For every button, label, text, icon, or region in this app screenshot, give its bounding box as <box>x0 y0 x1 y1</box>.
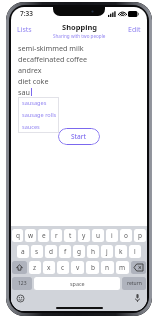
staticText: e <box>42 231 46 240</box>
button[interactable]: t <box>64 229 76 242</box>
staticText: semi-skimmed milk <box>18 43 84 53</box>
staticText: decaffeinated coffee <box>18 54 88 64</box>
button[interactable]: m <box>116 261 129 274</box>
staticText: sauces <box>22 123 40 131</box>
button[interactable]: k <box>115 245 127 258</box>
button[interactable]: i <box>106 229 118 242</box>
button[interactable]: Shift <box>12 261 27 274</box>
staticText: 7:33 <box>20 9 33 18</box>
staticText: r <box>55 231 58 240</box>
staticText: v <box>76 263 80 272</box>
staticText: sausage rolls <box>22 111 57 119</box>
staticText: l <box>134 247 136 256</box>
staticText: n <box>105 263 110 272</box>
staticText: j <box>106 247 108 256</box>
button[interactable]: s <box>31 245 43 258</box>
button[interactable]: p <box>134 229 146 242</box>
button[interactable]: return <box>122 277 146 290</box>
button[interactable]: h <box>87 245 99 258</box>
staticText: b <box>91 263 95 272</box>
button[interactable]: 123 <box>12 277 32 290</box>
staticText: Sharing with two people <box>53 33 106 39</box>
staticText: u <box>96 231 101 240</box>
staticText: space <box>70 280 85 287</box>
button[interactable]: Delete <box>131 261 146 274</box>
staticText: sausages <box>22 99 47 107</box>
button[interactable]: sausage rolls <box>18 109 59 121</box>
button[interactable]: sauces <box>18 121 59 133</box>
button[interactable]: r <box>51 229 62 242</box>
staticText: 123 <box>18 280 27 287</box>
staticText: Start <box>71 132 87 141</box>
staticText: return <box>127 280 142 287</box>
staticText: k <box>119 247 123 256</box>
staticText: a <box>21 247 25 256</box>
button[interactable]: Emoji <box>15 293 25 303</box>
staticText: x <box>47 263 51 272</box>
staticText: m <box>119 263 126 272</box>
button[interactable]: w <box>25 229 36 242</box>
staticText: z <box>33 263 37 272</box>
staticText: Shopping <box>62 22 98 32</box>
button[interactable]: q <box>12 229 23 242</box>
button[interactable]: e <box>38 229 49 242</box>
button[interactable]: sausages <box>18 97 59 109</box>
staticText: i <box>111 231 113 240</box>
button[interactable]: Start <box>58 128 100 145</box>
staticText: Lists <box>17 25 32 35</box>
button[interactable]: Dictation <box>132 293 142 303</box>
button[interactable]: l <box>129 245 141 258</box>
staticText: sau <box>18 87 30 97</box>
button[interactable]: z <box>29 261 41 274</box>
button[interactable]: u <box>92 229 104 242</box>
button[interactable]: j <box>101 245 113 258</box>
staticText: d <box>49 247 53 256</box>
staticText: Edit <box>128 25 141 35</box>
button[interactable]: Lists <box>11 23 36 37</box>
staticText: w <box>28 231 34 240</box>
button[interactable]: c <box>57 261 69 274</box>
button[interactable]: o <box>120 229 132 242</box>
button[interactable]: d <box>45 245 57 258</box>
button[interactable]: diet coke <box>11 75 147 86</box>
button[interactable]: a <box>17 245 29 258</box>
button[interactable]: space <box>34 277 120 290</box>
staticText: c <box>61 263 65 272</box>
button[interactable]: decaffeinated coffee <box>11 53 147 64</box>
button[interactable]: Edit <box>124 23 147 37</box>
button[interactable]: g <box>73 245 85 258</box>
staticText: p <box>138 231 142 240</box>
staticText: diet coke <box>18 76 49 86</box>
button[interactable]: y <box>78 229 90 242</box>
button[interactable]: f <box>59 245 71 258</box>
button[interactable]: x <box>43 261 55 274</box>
button[interactable]: b <box>86 261 99 274</box>
button[interactable]: semi-skimmed milk <box>11 42 147 53</box>
staticText: q <box>16 231 20 240</box>
button[interactable]: n <box>101 261 114 274</box>
button[interactable]: andrex <box>11 64 147 75</box>
button[interactable]: v <box>71 261 84 274</box>
staticText: o <box>124 231 128 240</box>
staticText: andrex <box>18 65 42 75</box>
staticText: y <box>82 231 86 240</box>
staticText: t <box>69 231 72 240</box>
staticText: s <box>35 247 39 256</box>
staticText: g <box>77 247 81 256</box>
staticText: f <box>64 247 67 256</box>
staticText: h <box>91 247 96 256</box>
